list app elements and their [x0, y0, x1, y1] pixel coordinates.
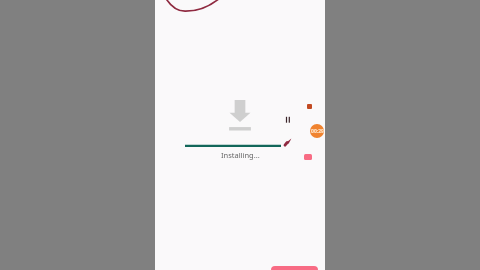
- button[interactable]: Item: [307, 104, 312, 109]
- staticText: 00:29: [311, 128, 324, 135]
- button[interactable]: Timer: [310, 124, 324, 138]
- button[interactable]: Action: [304, 154, 312, 160]
- staticText: Installing...: [221, 150, 260, 160]
- other: Brush: [283, 135, 295, 147]
- button[interactable]: Pause: [282, 112, 296, 126]
- button[interactable]: Bottom action: [271, 266, 318, 270]
- other: Download: [228, 98, 252, 132]
